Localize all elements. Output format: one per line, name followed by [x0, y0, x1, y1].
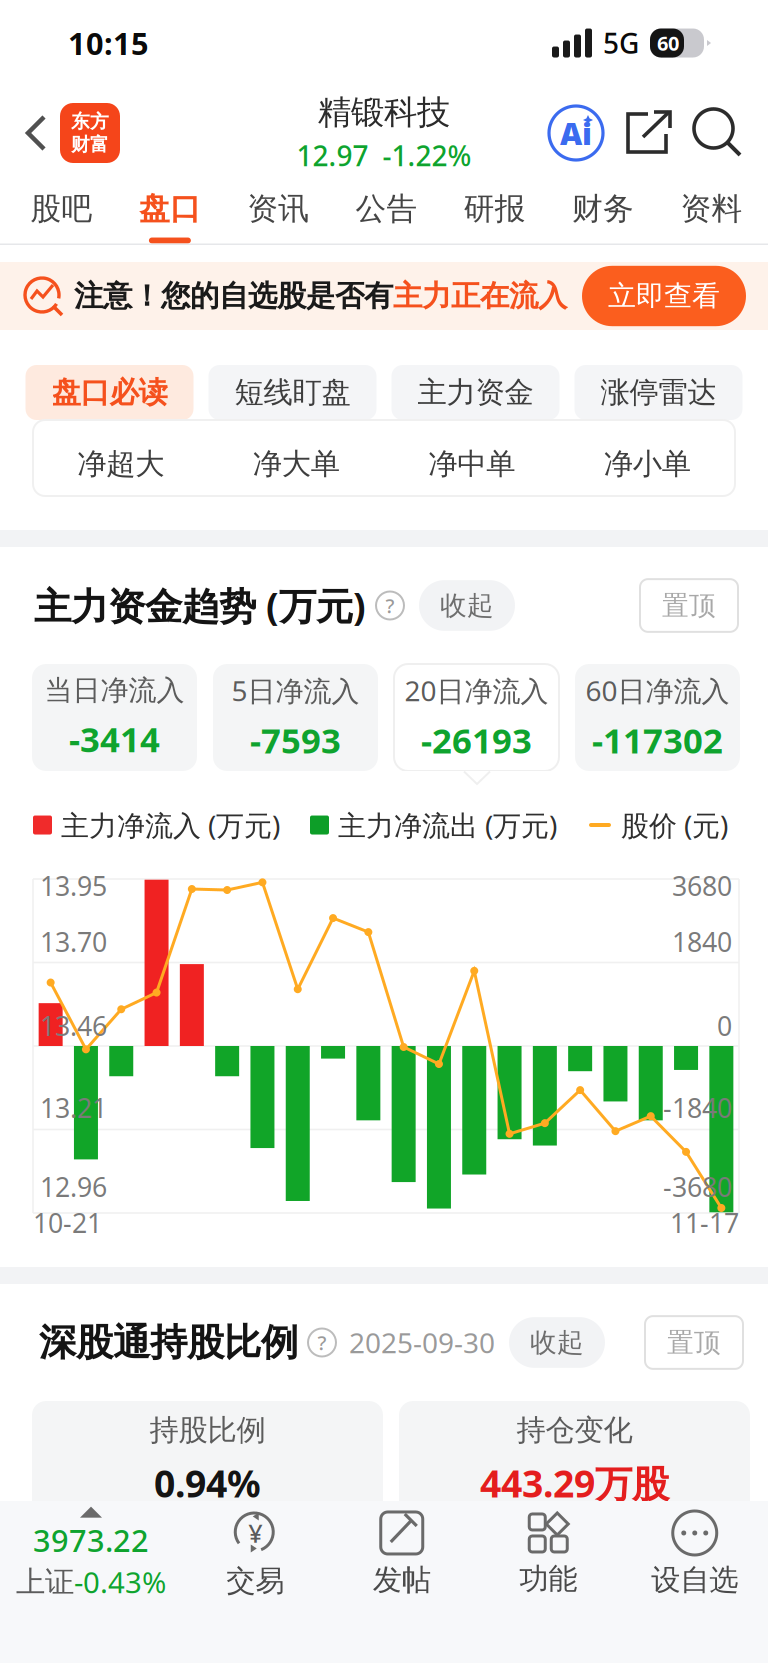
- button[interactable]: Back: [0, 87, 60, 179]
- button[interactable]: 发帖: [328, 1508, 475, 1600]
- staticText: 12.96: [40, 1169, 107, 1204]
- staticText: 深股通持股比例: [39, 1320, 298, 1365]
- button[interactable]: 当日净流入: [32, 664, 197, 771]
- staticText: 0.94%: [154, 1458, 261, 1508]
- staticText: 上证: [16, 1564, 74, 1600]
- button[interactable]: 20日净流入: [394, 664, 559, 771]
- staticText: 资讯: [247, 190, 309, 228]
- staticText: 财富: [71, 133, 109, 156]
- staticText: 60日净流入: [585, 672, 729, 709]
- staticText: 立即查看: [608, 279, 720, 313]
- button[interactable]: 收起: [509, 1317, 605, 1368]
- staticText: 11-17: [670, 1205, 739, 1240]
- button[interactable]: 短线盯盘: [208, 365, 376, 420]
- button[interactable]: 60日净流入: [575, 664, 740, 771]
- staticText: 20日净流入: [404, 672, 548, 709]
- button[interactable]: 股吧: [7, 180, 116, 243]
- staticText: 持仓变化: [516, 1412, 632, 1448]
- staticText: 1840: [672, 924, 732, 959]
- button[interactable]: 净中单: [384, 432, 559, 496]
- staticText: 股吧: [31, 190, 93, 228]
- staticText: 注意！: [74, 278, 161, 314]
- staticText: 5日净流入: [231, 672, 359, 709]
- button[interactable]: 5日净流入: [213, 664, 378, 771]
- button[interactable]: 资料: [657, 180, 765, 243]
- staticText: 13.95: [40, 868, 107, 903]
- staticText: 财务: [572, 190, 634, 228]
- staticText: 盘口必读: [51, 374, 167, 410]
- button[interactable]: 设自选: [621, 1508, 768, 1600]
- staticText: 13.21: [40, 1090, 107, 1125]
- button[interactable]: 净小单: [559, 432, 735, 496]
- staticText: 净中单: [428, 446, 515, 482]
- staticText: -117302: [592, 717, 723, 763]
- staticText: 资料: [680, 190, 742, 228]
- staticText: 置顶: [667, 1326, 721, 1359]
- button[interactable]: AI assistant: [548, 87, 604, 179]
- staticText: -3680: [663, 1169, 732, 1204]
- button[interactable]: 净大单: [208, 432, 384, 496]
- staticText: 涨停雷达: [600, 374, 716, 410]
- staticText: 3973.22: [33, 1520, 149, 1560]
- staticText: 公告: [355, 190, 417, 228]
- staticText: 净小单: [604, 446, 691, 482]
- staticText: 净超大: [77, 446, 164, 482]
- staticText: ¥: [248, 1516, 262, 1550]
- button[interactable]: 净超大: [33, 432, 208, 496]
- button[interactable]: ¥: [182, 1508, 328, 1600]
- button[interactable]: 资讯: [224, 180, 332, 243]
- staticText: 主力资金趋势 (万元): [34, 581, 366, 630]
- button[interactable]: 立即查看: [582, 266, 746, 326]
- button[interactable]: 持股比例: [32, 1401, 383, 1519]
- staticText: 持股比例: [149, 1412, 265, 1448]
- staticText: 股价 (元): [621, 806, 728, 844]
- staticText: 主力资金: [417, 374, 533, 410]
- staticText: 研报: [464, 190, 526, 228]
- button[interactable]: 公告: [332, 180, 441, 243]
- staticText: ?: [385, 592, 394, 619]
- button[interactable]: 财务: [549, 180, 657, 243]
- staticText: 主力净流入 (万元): [61, 806, 280, 844]
- staticText: 交易: [226, 1563, 284, 1599]
- button[interactable]: Search: [672, 87, 768, 179]
- button[interactable]: 收起: [419, 580, 515, 631]
- button[interactable]: Share: [604, 87, 672, 179]
- staticText: 10:15: [68, 23, 149, 63]
- button[interactable]: 涨停雷达: [574, 365, 742, 420]
- staticText: -1840: [663, 1090, 732, 1125]
- staticText: 2025-09-30: [349, 1324, 495, 1361]
- button[interactable]: 功能: [475, 1508, 621, 1600]
- staticText: 收起: [440, 589, 494, 622]
- button[interactable]: East Money home: [60, 87, 120, 179]
- staticText: 设自选: [651, 1562, 738, 1598]
- staticText: 443.29万股: [480, 1458, 669, 1508]
- button[interactable]: 置顶: [645, 1316, 743, 1369]
- button[interactable]: 盘口: [116, 180, 224, 243]
- staticText: 10-21: [33, 1205, 102, 1240]
- staticText: 收起: [530, 1326, 584, 1359]
- staticText: -0.43%: [74, 1562, 166, 1601]
- staticText: -26193: [421, 717, 532, 763]
- button[interactable]: 持仓变化: [399, 1401, 750, 1519]
- staticText: 您的自选股是否有: [161, 278, 393, 314]
- staticText: 短线盯盘: [234, 374, 350, 410]
- staticText: 主力净流出 (万元): [338, 806, 557, 844]
- staticText: ?: [317, 1329, 326, 1356]
- button[interactable]: 研报: [441, 180, 549, 243]
- staticText: 13.46: [40, 1008, 107, 1043]
- staticText: Ai: [560, 113, 592, 153]
- staticText: 主力正在流入: [393, 278, 567, 314]
- staticText: 12.97 -1.22%: [296, 137, 471, 174]
- button[interactable]: 3973.22: [0, 1508, 182, 1600]
- staticText: 东方: [71, 110, 109, 133]
- staticText: 3680: [672, 868, 732, 903]
- staticText: -7593: [250, 717, 341, 763]
- button[interactable]: 盘口必读: [25, 365, 193, 420]
- staticText: 0: [717, 1008, 732, 1043]
- staticText: 净大单: [253, 446, 340, 482]
- button[interactable]: 置顶: [640, 579, 738, 632]
- staticText: 60: [657, 30, 679, 56]
- staticText: 置顶: [662, 589, 716, 622]
- staticText: 盘口: [139, 190, 201, 228]
- button[interactable]: 主力资金: [391, 365, 559, 420]
